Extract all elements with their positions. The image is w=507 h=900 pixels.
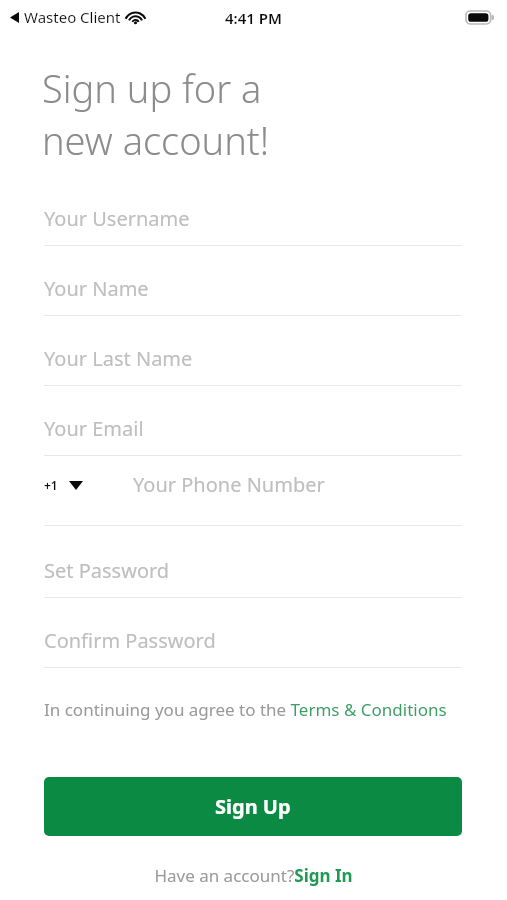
staticText: Your Phone Number bbox=[133, 471, 325, 498]
button[interactable]: Your Username bbox=[44, 191, 462, 245]
staticText: Your Name bbox=[44, 275, 149, 302]
staticText: In continuing you agree to the Terms & C… bbox=[44, 698, 447, 721]
button[interactable]: Select country code bbox=[67, 476, 85, 494]
button[interactable]: Set Password bbox=[44, 543, 462, 597]
staticText: Set Password bbox=[44, 557, 170, 584]
staticText: Confirm Password bbox=[44, 627, 216, 654]
button[interactable]: Confirm Password bbox=[44, 613, 462, 667]
staticText: Wasteo Client bbox=[24, 7, 121, 27]
staticText: Sign up for a new account! bbox=[42, 62, 462, 166]
staticText: Have an account?Sign In bbox=[154, 864, 353, 887]
staticText: Sign Up bbox=[215, 793, 291, 820]
staticText: Your Username bbox=[44, 205, 190, 232]
staticText: Your Email bbox=[44, 415, 144, 442]
button[interactable]: +1 bbox=[44, 471, 462, 525]
button[interactable]: Your Last Name bbox=[44, 331, 462, 385]
button[interactable]: Your Name bbox=[44, 261, 462, 315]
staticText: 4:41 PM bbox=[225, 8, 282, 28]
button[interactable]: Have an account?Sign In bbox=[0, 860, 507, 890]
button[interactable]: Your Email bbox=[44, 401, 462, 455]
button[interactable]: Sign Up bbox=[44, 777, 462, 836]
button[interactable]: In continuing you agree to the Terms & C… bbox=[44, 698, 462, 721]
staticText: Your Last Name bbox=[44, 345, 193, 372]
staticText: +1 bbox=[44, 477, 58, 493]
